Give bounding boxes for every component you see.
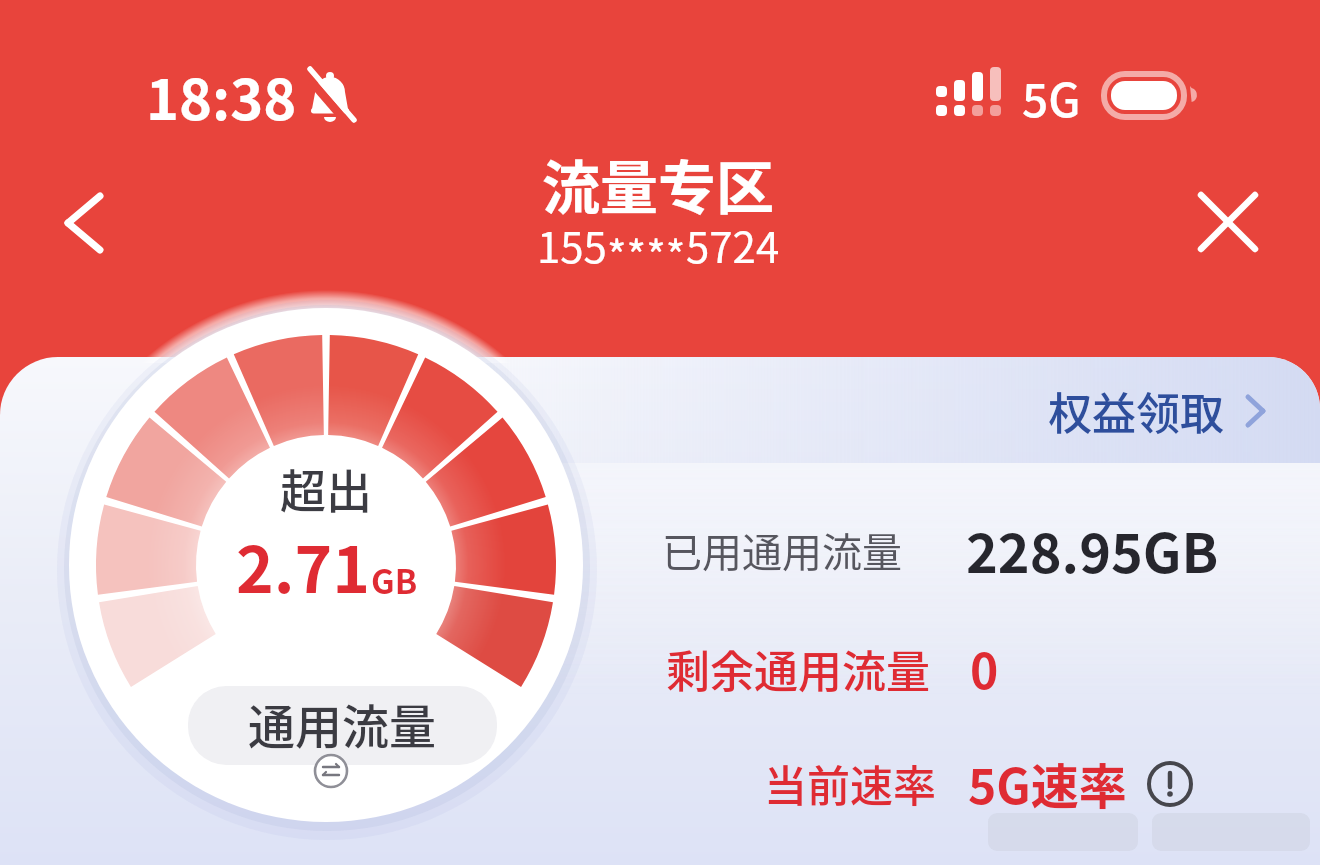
button[interactable]: 通用流量 [42,663,642,783]
button[interactable] [1135,756,1191,812]
staticText: 已用通用流量 [662,521,902,579]
staticText: 228.95GB [966,510,1219,588]
staticText: 剩余通用流量 [666,637,930,701]
staticText: 5G速率 [968,748,1127,818]
staticText: 权益领取 [1048,379,1224,443]
staticText: **** [607,223,686,279]
staticText: 流量专区 [542,142,775,226]
staticText: 当前速率 [764,752,936,814]
button[interactable] [48,186,120,260]
staticText: 2.71 [236,519,371,609]
staticText: 18:38 [146,55,297,136]
button[interactable] [1186,180,1270,264]
staticText: 0 [970,633,999,703]
staticText: 超出 [280,455,372,522]
staticText: 5G [1022,64,1081,131]
button[interactable]: 权益领取 [836,351,1320,471]
staticText: 155 [537,214,607,270]
staticText: 5724 [686,214,780,270]
staticText: 通用流量 [248,689,436,757]
staticText: GB [371,556,418,604]
